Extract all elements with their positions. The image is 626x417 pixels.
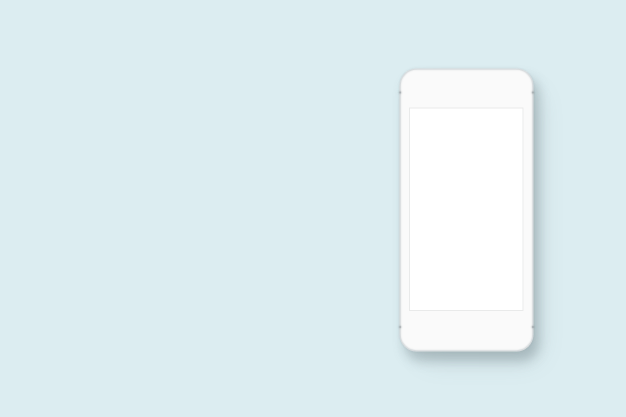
button[interactable]: Phone screen preview	[409, 108, 524, 312]
